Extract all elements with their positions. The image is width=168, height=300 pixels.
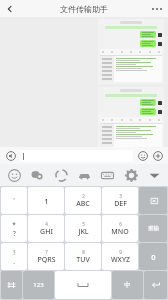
staticText: 中 xyxy=(124,281,131,289)
button[interactable]: 重输 xyxy=(139,215,167,242)
button[interactable]: Hide keyboard xyxy=(144,165,164,185)
staticText: JKL xyxy=(78,227,89,237)
button[interactable]: ' xyxy=(1,187,27,214)
button[interactable]: 中 xyxy=(112,271,143,299)
staticText: 5 xyxy=(82,221,85,227)
staticText: PQRS xyxy=(37,255,56,265)
button[interactable]: Keyboard xyxy=(97,165,117,185)
button[interactable]: 7 xyxy=(28,243,64,270)
staticText: WXYZ xyxy=(111,255,130,265)
staticText: DEF xyxy=(114,199,127,209)
staticText: 重输 xyxy=(148,225,159,232)
button[interactable] xyxy=(139,187,167,214)
button[interactable]: 4 xyxy=(28,215,64,242)
staticText: 9 xyxy=(119,249,122,255)
button[interactable]: 0 xyxy=(139,243,167,270)
staticText: MNO xyxy=(111,227,129,237)
button[interactable]: 6 xyxy=(102,215,138,242)
button[interactable]: Recycle xyxy=(51,165,71,185)
button[interactable]: 123 xyxy=(23,271,54,299)
staticText: 0 xyxy=(151,252,156,262)
button[interactable]: 5 xyxy=(65,215,101,242)
button[interactable]: Back xyxy=(0,0,20,17)
staticText: ! xyxy=(13,248,15,257)
button[interactable]: More xyxy=(151,149,164,162)
button[interactable] xyxy=(144,271,167,299)
staticText: GHI xyxy=(40,227,53,237)
button[interactable]: 2 xyxy=(65,187,101,214)
staticText: ABC xyxy=(76,199,90,209)
staticText: 1 xyxy=(44,196,49,206)
button[interactable]: ! xyxy=(1,243,27,270)
button[interactable]: Voice input xyxy=(4,149,17,162)
staticText: ' xyxy=(13,196,15,205)
button[interactable]: 9 xyxy=(102,243,138,270)
button[interactable] xyxy=(20,150,133,162)
staticText: ? xyxy=(13,229,16,238)
button[interactable] xyxy=(55,271,111,299)
staticText: . xyxy=(13,257,15,266)
button[interactable]: More options xyxy=(146,0,168,17)
button[interactable]: * xyxy=(1,215,27,242)
staticText: 8 xyxy=(82,249,85,255)
staticText: TUV xyxy=(76,255,90,265)
staticText: 4 xyxy=(45,221,48,227)
button[interactable]: Car mode xyxy=(74,165,94,185)
button[interactable]: Emoji xyxy=(136,149,149,162)
staticText: 2 xyxy=(82,193,85,199)
button[interactable]: Emoji xyxy=(4,165,24,185)
button[interactable]: 8 xyxy=(65,243,101,270)
button[interactable]: Settings xyxy=(121,165,141,185)
staticText: 3 xyxy=(119,193,122,199)
staticText: 7 xyxy=(45,249,48,255)
button[interactable]: 1 xyxy=(28,187,64,214)
button[interactable]: Chat xyxy=(27,165,47,185)
button[interactable] xyxy=(1,271,22,299)
staticText: 文件传输助手 xyxy=(60,4,108,14)
staticText: * xyxy=(12,220,16,229)
staticText: 6 xyxy=(119,221,122,227)
button[interactable]: 3 xyxy=(102,187,138,214)
staticText: 123 xyxy=(33,281,44,289)
